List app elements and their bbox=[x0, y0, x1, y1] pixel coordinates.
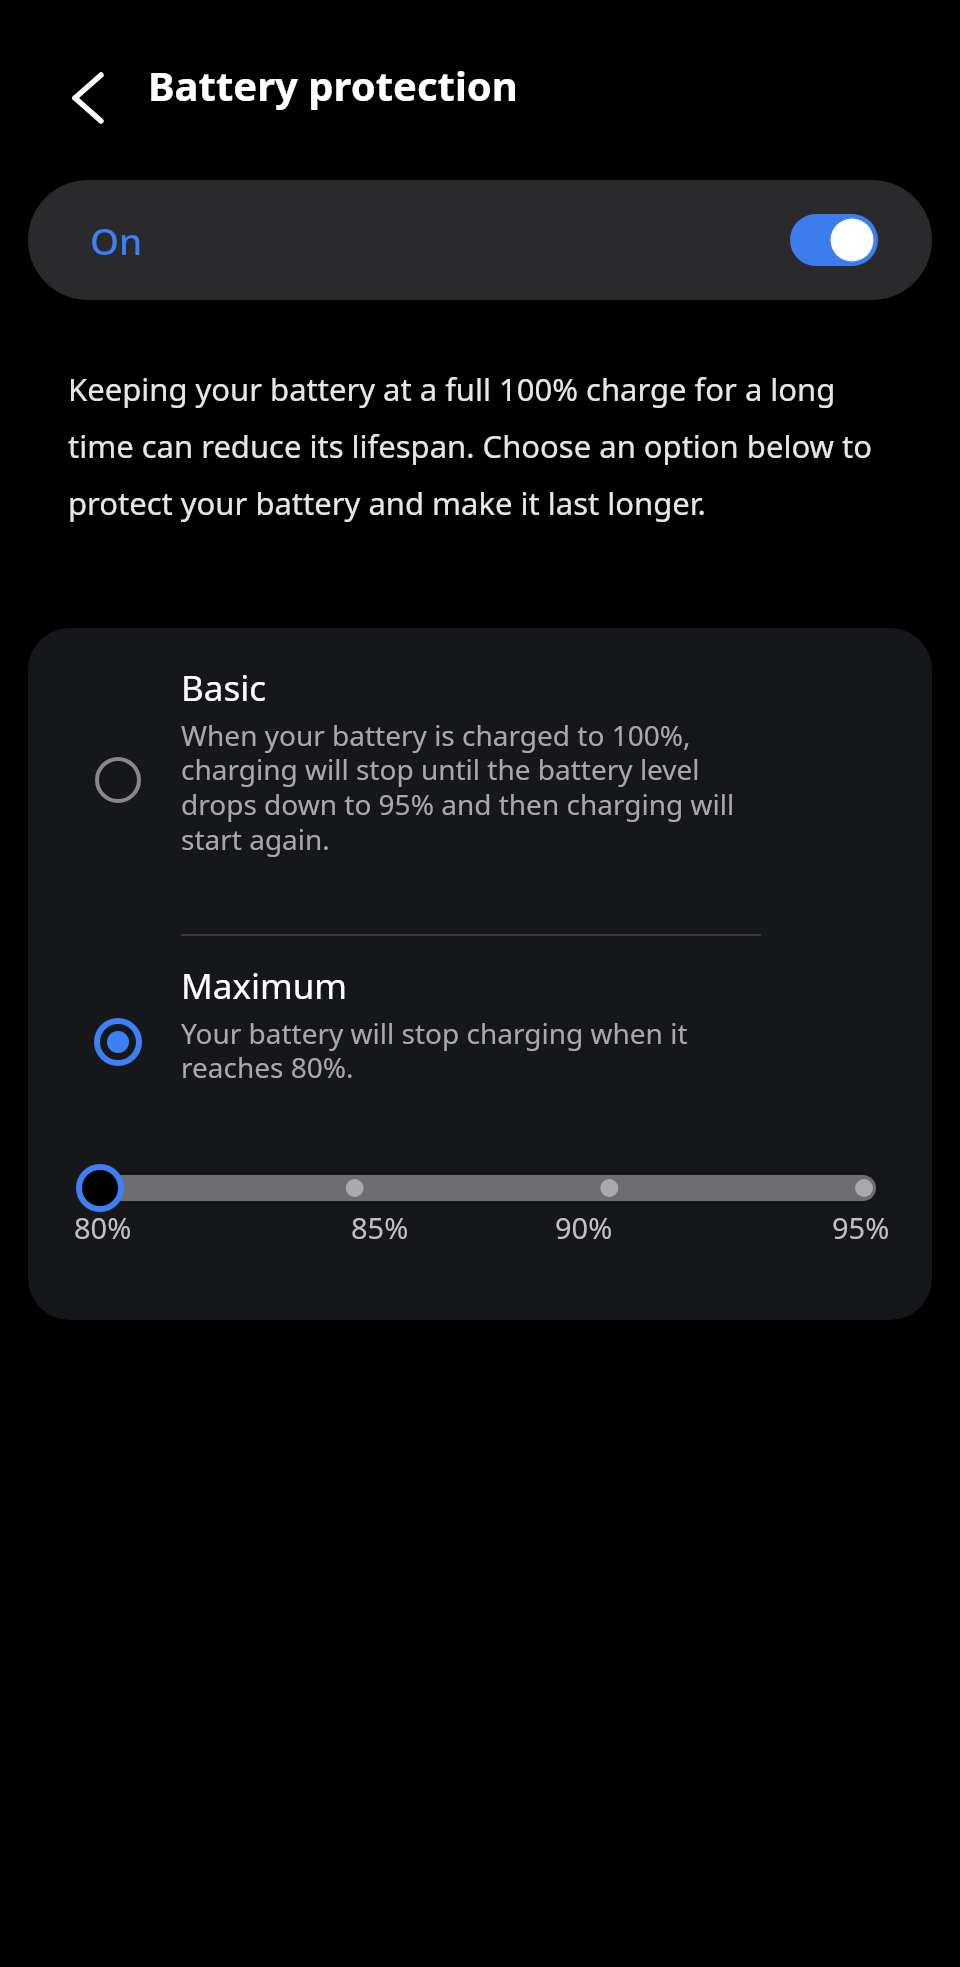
staticText: Basic bbox=[181, 664, 266, 712]
button[interactable]: Maximum bbox=[28, 936, 932, 1116]
staticText: Battery protection bbox=[148, 58, 518, 112]
staticText: 90% bbox=[555, 1208, 613, 1247]
staticText: 95% bbox=[832, 1208, 890, 1247]
button[interactable]: On bbox=[28, 180, 932, 300]
button[interactable]: Back bbox=[56, 66, 120, 130]
staticText: When your battery is charged to 100%, ch… bbox=[181, 716, 751, 859]
staticText: 85% bbox=[351, 1208, 409, 1247]
staticText: 80% bbox=[74, 1208, 132, 1247]
button[interactable]: 80% bbox=[74, 1148, 890, 1258]
staticText: Keeping your battery at a full 100% char… bbox=[68, 368, 896, 524]
button[interactable]: Basic bbox=[28, 628, 932, 934]
staticText: On bbox=[90, 215, 143, 265]
staticText: Maximum bbox=[181, 962, 348, 1010]
staticText: Your battery will stop charging when it … bbox=[181, 1014, 761, 1087]
